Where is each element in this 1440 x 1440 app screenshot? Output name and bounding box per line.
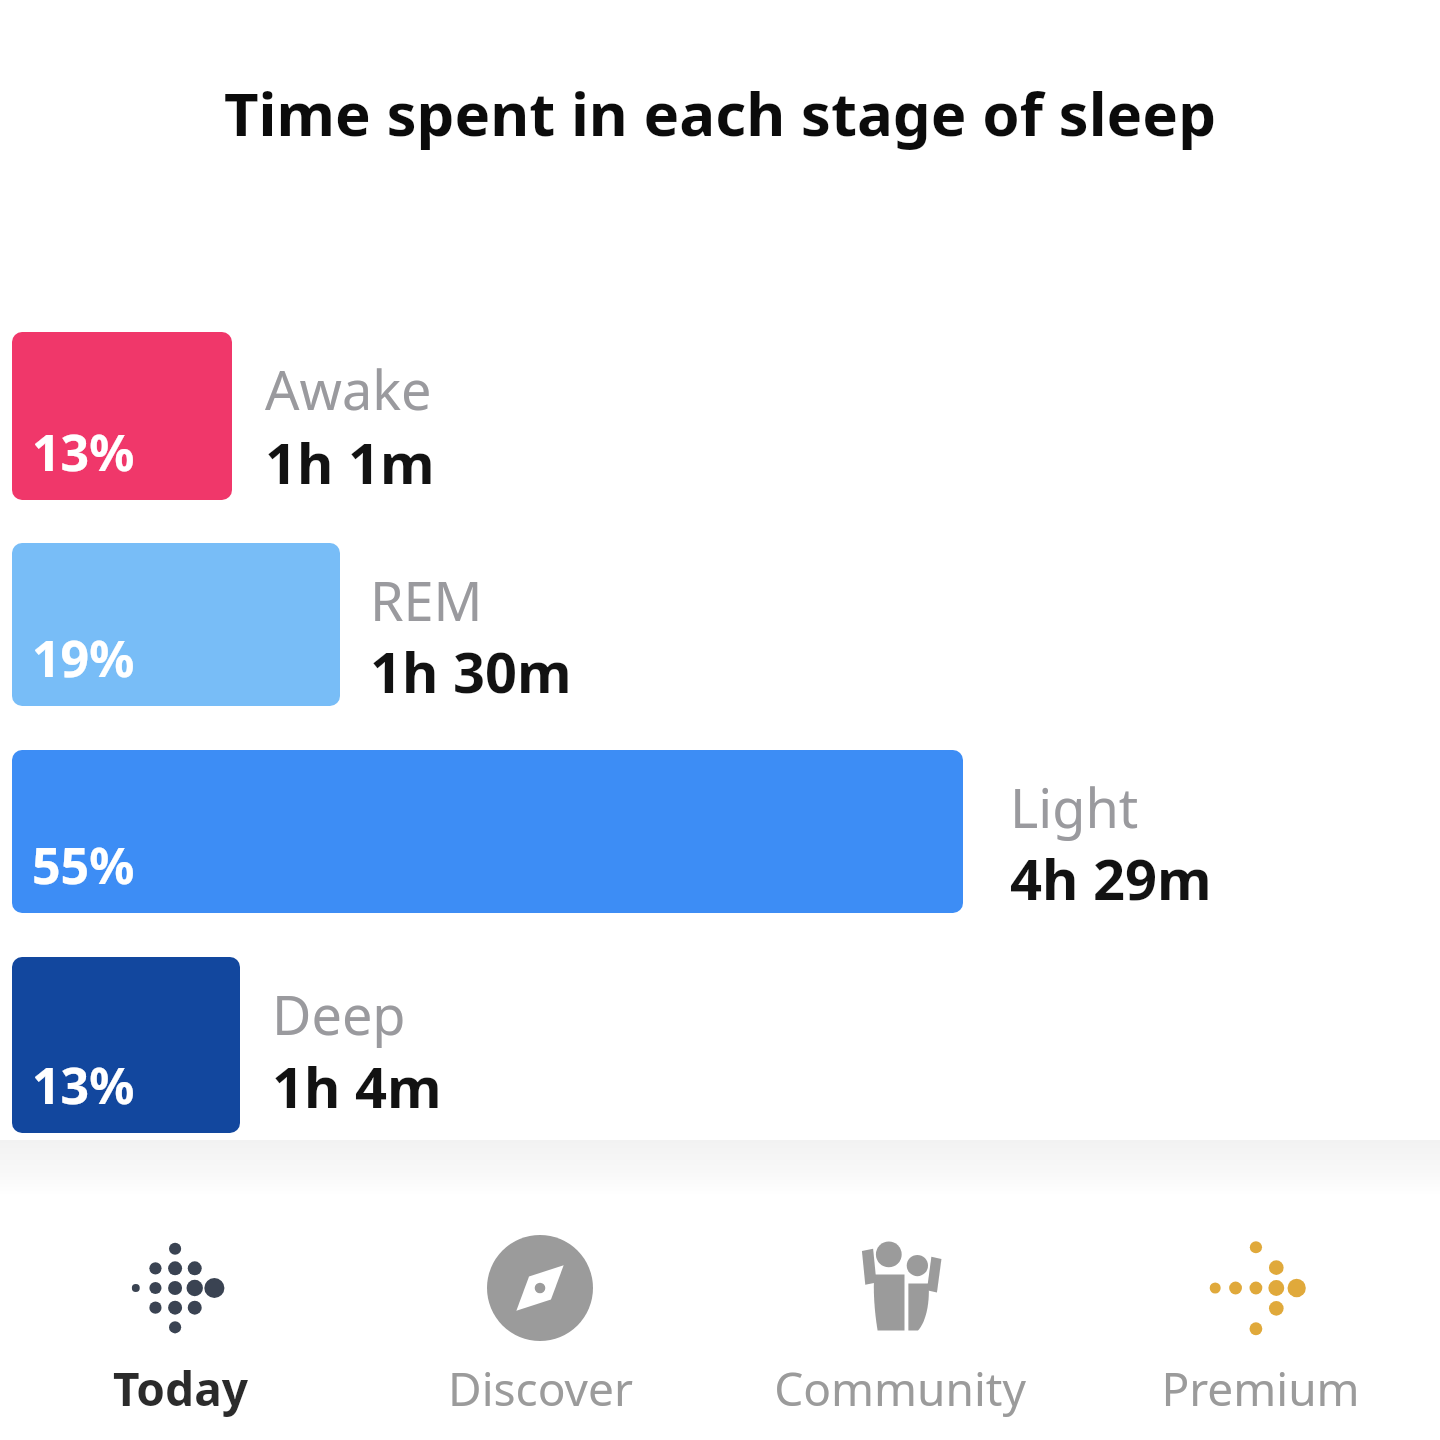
staticText: 1h 1m <box>265 424 435 500</box>
button[interactable]: 13% <box>12 332 232 500</box>
staticText: Discover <box>448 1357 633 1420</box>
staticText: REM <box>370 563 483 637</box>
staticText: Community <box>774 1357 1026 1420</box>
button[interactable]: Premium <box>1080 1195 1440 1440</box>
staticText: 55% <box>32 831 135 899</box>
button[interactable]: 55% <box>12 750 963 913</box>
staticText: 1h 30m <box>370 633 572 709</box>
staticText: Time spent in each stage of sleep <box>0 72 1440 154</box>
staticText: Light <box>1010 770 1139 844</box>
button[interactable]: Community <box>720 1195 1080 1440</box>
button[interactable]: Discover <box>360 1195 720 1440</box>
staticText: Premium <box>1161 1357 1360 1420</box>
staticText: Deep <box>272 977 406 1051</box>
button[interactable]: 19% <box>12 543 340 706</box>
staticText: Awake <box>265 352 432 426</box>
button[interactable]: 13% <box>12 957 240 1133</box>
staticText: 13% <box>32 418 135 486</box>
staticText: Today <box>113 1357 248 1420</box>
button[interactable]: Today <box>0 1195 360 1440</box>
staticText: 1h 4m <box>272 1048 442 1124</box>
staticText: 13% <box>32 1051 135 1119</box>
staticText: 4h 29m <box>1010 840 1212 916</box>
staticText: 19% <box>32 624 135 692</box>
